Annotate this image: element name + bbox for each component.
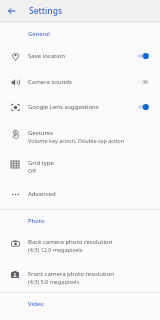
staticText: Settings	[29, 5, 63, 17]
staticText: (4:3) 5.0 megapixels	[28, 278, 80, 285]
staticText: Save location	[28, 52, 66, 60]
button[interactable]: Gestures	[0, 126, 160, 148]
button[interactable]: Camera sounds	[0, 74, 160, 90]
button[interactable]: Grid type	[0, 156, 160, 178]
button[interactable]: Save location	[0, 48, 160, 64]
staticText: Back camera photo resolution	[28, 238, 113, 246]
button[interactable]: Google Lens suggestions	[0, 99, 160, 115]
button[interactable]: Back	[3, 3, 19, 19]
staticText: Video	[28, 300, 44, 308]
staticText: (4:3) 12.0 megapixels	[28, 246, 83, 253]
staticText: Volume key action, Double-tap action	[28, 137, 125, 144]
staticText: Front camera photo resolution	[28, 270, 114, 278]
staticText: Camera sounds	[28, 78, 72, 86]
staticText: Google Lens suggestions	[28, 103, 99, 111]
staticText: Off	[28, 167, 37, 174]
staticText: General	[28, 30, 50, 38]
button[interactable]: Advanced	[0, 186, 160, 202]
button[interactable]: Front camera photo resolution	[0, 267, 160, 289]
staticText: Gestures	[28, 129, 54, 137]
staticText: Advanced	[28, 190, 56, 198]
staticText: Grid type	[28, 159, 54, 167]
button[interactable]: Back camera photo resolution	[0, 235, 160, 257]
staticText: Photo	[28, 217, 45, 225]
